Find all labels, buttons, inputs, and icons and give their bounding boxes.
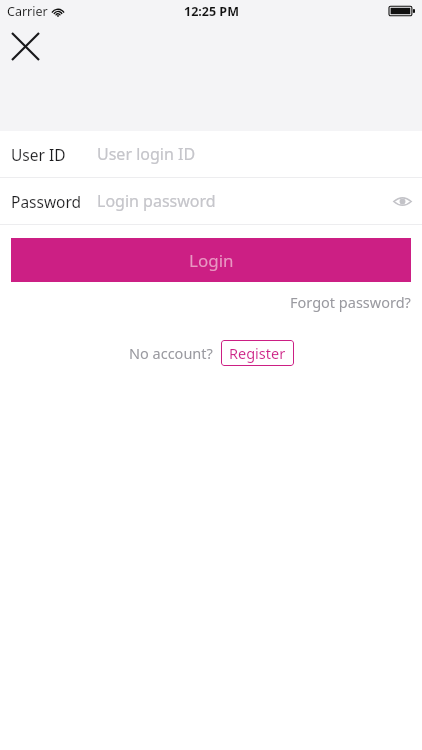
button[interactable]: Close [4,25,46,67]
button[interactable]: Password [0,178,422,224]
staticText: Login [189,249,234,272]
staticText: User ID [11,144,66,165]
staticText: User login ID [97,143,196,165]
staticText: Login password [97,190,216,212]
staticText: Password [11,191,82,212]
staticText: 12:25 PM [184,3,239,20]
button[interactable]: Show password [382,181,422,221]
button[interactable]: Forgot password? [290,290,422,314]
staticText: Carrier [7,3,48,20]
staticText: Register [229,343,286,363]
staticText: Forgot password? [290,292,411,312]
button[interactable]: Register [221,340,294,366]
staticText: No account? [129,343,213,363]
button[interactable]: Login [11,238,411,282]
button[interactable]: User ID [0,131,422,177]
